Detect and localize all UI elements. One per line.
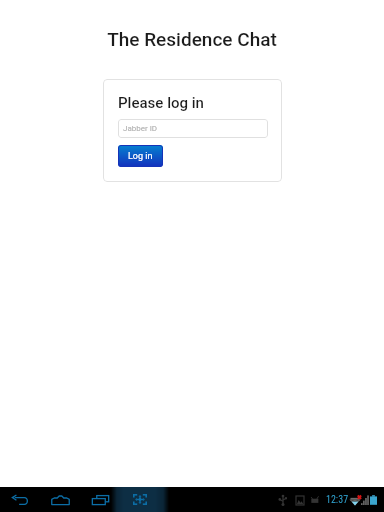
button[interactable]: Home: [40, 487, 80, 512]
staticText: Log in: [128, 151, 153, 162]
staticText: Please log in: [118, 94, 204, 112]
button[interactable]: Back: [0, 487, 40, 512]
staticText: The Residence Chat: [107, 28, 277, 50]
button[interactable]: Jabber ID: [118, 119, 268, 138]
button[interactable]: Log in: [118, 145, 163, 167]
staticText: Jabber ID: [123, 124, 158, 133]
button[interactable]: Recent apps: [80, 487, 120, 512]
staticText: 12:37: [326, 494, 349, 506]
button[interactable]: Full screen: [120, 487, 160, 512]
